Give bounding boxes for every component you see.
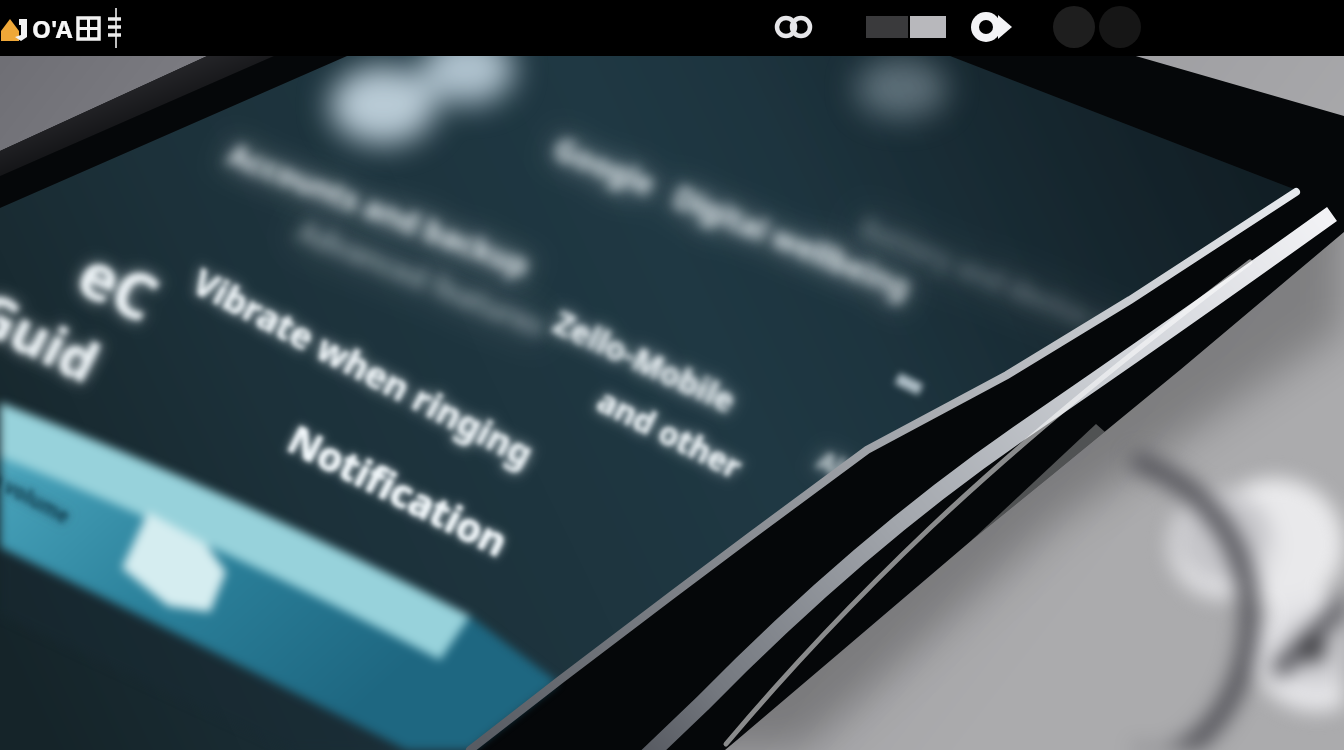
staticText: Zello-Mobile	[547, 300, 743, 423]
button[interactable]: Notification and other sounds	[154, 376, 629, 690]
staticText: Battery and device care	[855, 209, 1152, 356]
button[interactable]: Notification	[0, 0, 32, 56]
staticText: Vibrate when ringing	[184, 257, 542, 478]
staticText: Media volume	[0, 443, 74, 529]
staticText: Battery and device care	[855, 209, 1152, 356]
staticText: eC	[66, 230, 172, 340]
staticText: Notification	[280, 411, 518, 568]
staticText: Guid	[0, 272, 113, 399]
button[interactable]: Google Digital wellbeing	[407, 65, 1010, 431]
staticText: and other	[590, 378, 750, 489]
button[interactable]: Vibrate when ringing	[0, 216, 494, 552]
button[interactable]: Media volume slider	[0, 398, 419, 721]
staticText: Accounts and backup	[223, 133, 536, 286]
staticText: eC	[66, 230, 172, 340]
staticText: Google Digital wellbeing	[548, 127, 917, 308]
staticText: Advanced features	[293, 211, 550, 345]
staticText: Media volume	[0, 443, 74, 529]
staticText: Alert	[812, 442, 886, 503]
staticText: Advanced features	[293, 211, 550, 345]
staticText: Notification	[280, 411, 518, 568]
staticText: Alert	[812, 442, 886, 503]
staticText: O'A	[32, 12, 73, 45]
button[interactable]: Accounts and backup	[0, 125, 533, 453]
button[interactable]: Zello-Mobile	[446, 256, 872, 539]
staticText: Zello-Mobile	[547, 300, 743, 423]
staticText: Accounts and backup	[223, 133, 536, 286]
staticText: Guid	[0, 272, 113, 399]
staticText: Google Digital wellbeing	[548, 127, 917, 308]
staticText: Vibrate when ringing	[184, 257, 542, 478]
staticText: and other	[590, 378, 750, 489]
